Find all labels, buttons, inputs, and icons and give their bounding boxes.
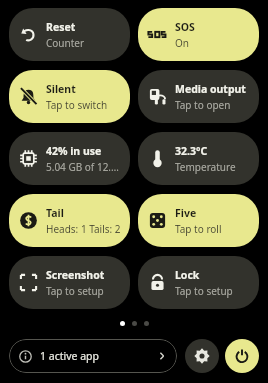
staticText: Heads: 1 Tails: 2 — [46, 222, 121, 236]
staticText: Silent — [46, 82, 76, 96]
button[interactable]: Reset — [9, 8, 130, 61]
staticText: Tail — [46, 206, 64, 220]
staticText: Tap to open — [175, 98, 231, 112]
button[interactable]: Media output — [138, 70, 259, 123]
staticText: Tap to setup — [46, 284, 104, 298]
staticText: Temperature — [175, 160, 236, 174]
staticText: Media output — [175, 82, 246, 96]
staticText: Five — [175, 206, 197, 220]
staticText: Counter — [46, 36, 85, 50]
button[interactable]: Lock — [138, 256, 259, 309]
button[interactable]: Five — [138, 194, 259, 247]
staticText: 42% in use — [46, 144, 102, 158]
staticText: 5.04 GB of 12.1… — [46, 160, 124, 174]
button[interactable]: 1 active app — [9, 339, 177, 373]
staticText: SOS — [175, 20, 195, 34]
button[interactable]: Power — [225, 339, 259, 373]
button[interactable]: Settings — [185, 339, 219, 373]
button[interactable]: Silent — [9, 70, 130, 123]
staticText: Tap to setup — [175, 284, 233, 298]
staticText: Tap to roll — [175, 222, 222, 236]
staticText: 1 active app — [40, 349, 99, 363]
button[interactable]: SOS — [138, 8, 259, 61]
staticText: Reset — [46, 20, 76, 34]
button[interactable]: Tail — [9, 194, 130, 247]
button[interactable]: Screenshot — [9, 256, 130, 309]
button[interactable]: 32.3°C — [138, 132, 259, 185]
button[interactable]: 42% in use — [9, 132, 130, 185]
staticText: Screenshot — [46, 268, 105, 282]
staticText: On — [175, 36, 189, 50]
staticText: Lock — [175, 268, 200, 282]
staticText: 32.3°C — [175, 144, 208, 158]
staticText: Tap to switch — [46, 98, 108, 112]
